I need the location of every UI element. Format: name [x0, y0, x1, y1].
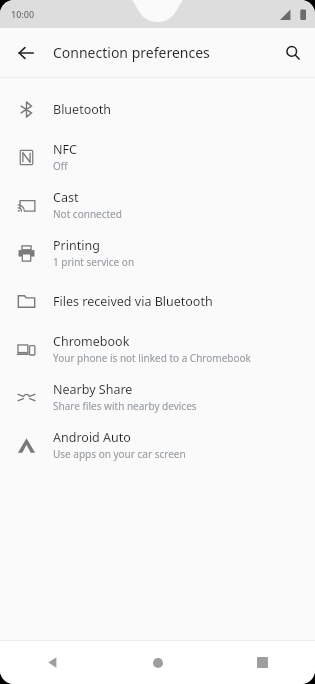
button[interactable]: Back [8, 35, 43, 70]
staticText: Off [53, 159, 68, 173]
staticText: Android Auto [53, 429, 131, 446]
staticText: Not connected [53, 207, 122, 221]
staticText: Bluetooth [53, 101, 112, 118]
staticText: Chromebook [53, 333, 130, 350]
button[interactable]: Home [105, 641, 210, 684]
button[interactable]: NFC [0, 133, 315, 181]
staticText: Cast [53, 189, 79, 206]
button[interactable]: Printing [0, 229, 315, 277]
button[interactable]: Nearby Share [0, 373, 315, 421]
staticText: Nearby Share [53, 381, 133, 398]
staticText: Use apps on your car screen [53, 447, 186, 461]
staticText: Connection preferences [53, 43, 210, 62]
button[interactable]: Files received via Bluetooth [0, 277, 315, 325]
button[interactable]: Bluetooth [0, 85, 315, 133]
staticText: 10:00 [11, 8, 35, 20]
staticText: Share files with nearby devices [53, 399, 197, 413]
button[interactable]: Chromebook [0, 325, 315, 373]
staticText: Your phone is not linked to a Chromebook [53, 351, 251, 365]
staticText: Files received via Bluetooth [53, 293, 213, 310]
button[interactable]: Android Auto [0, 421, 315, 469]
button[interactable]: Search [276, 36, 310, 70]
staticText: NFC [53, 141, 77, 158]
staticText: Printing [53, 237, 100, 254]
staticText: 1 print service on [53, 255, 135, 269]
button[interactable]: Cast [0, 181, 315, 229]
button[interactable]: Back [0, 641, 105, 684]
button[interactable]: Recents [210, 641, 315, 684]
